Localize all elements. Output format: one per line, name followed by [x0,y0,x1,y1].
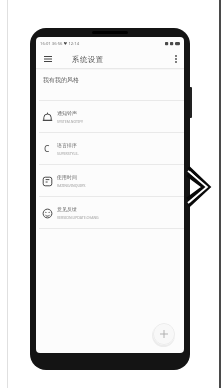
staticText: 通知铃声 [57,110,77,116]
button[interactable]: 使用时间 [36,165,184,196]
staticText: SYSTEM.NOTIFY [57,119,84,124]
button[interactable]: 通知铃声 [36,101,184,132]
staticText: 意见反馈 [57,206,77,212]
button[interactable] [168,50,184,68]
staticText: C [44,143,50,155]
staticText: 系统设置 [72,55,104,64]
staticText: 16:01 36·56 ♥ 12:14 [40,41,80,47]
staticText: VERSION.UPDATE.CHANG [57,215,99,220]
staticText: 使用时间 [57,174,77,180]
button[interactable]: C [36,133,184,164]
staticText: 我有我的风格 [43,76,79,84]
button[interactable]: 意见反馈 [36,197,184,228]
staticText: RATING/INQUIRY. [57,183,87,188]
button[interactable] [153,323,175,345]
staticText: SUPERSTYLE.. [57,151,80,156]
staticText: 语言排序 [57,142,77,148]
button[interactable] [36,50,60,68]
button[interactable] [186,165,213,207]
